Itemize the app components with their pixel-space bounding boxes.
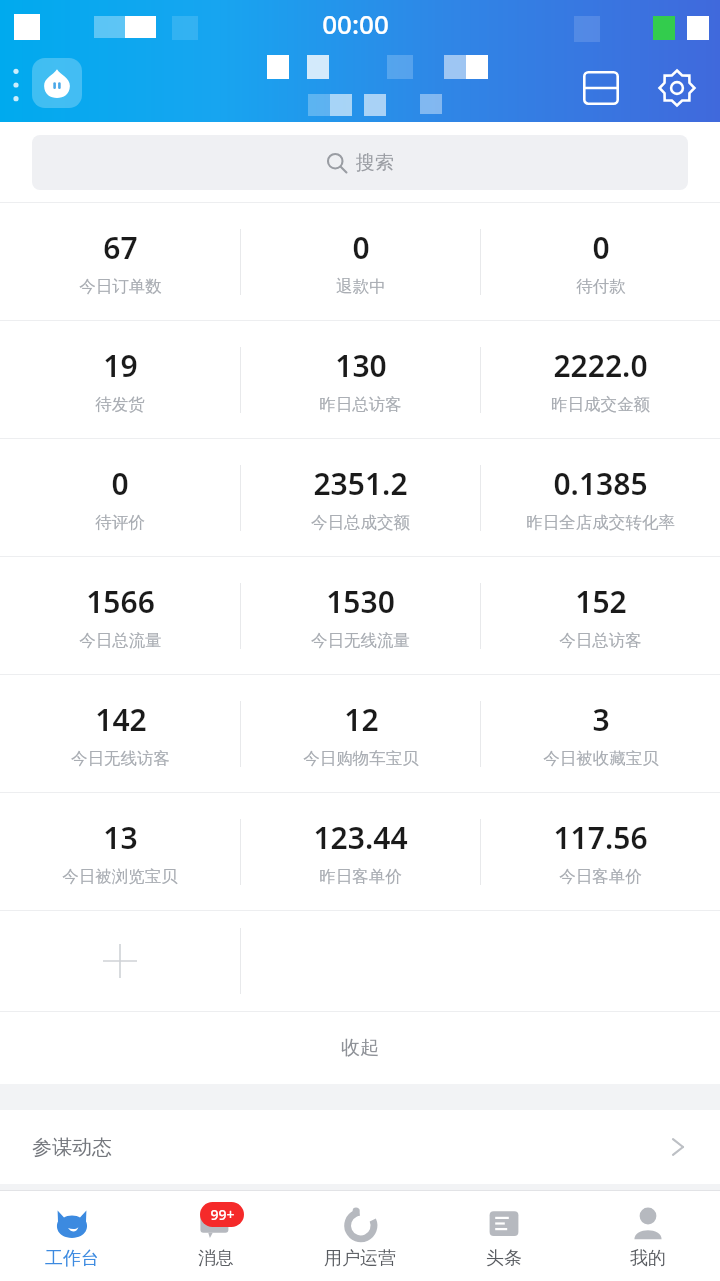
staticText: 工作台 [45,1247,99,1270]
staticText: 待付款 [576,276,626,297]
staticText: 0.1385 [553,463,648,504]
staticText: 今日无线流量 [311,630,410,651]
button[interactable]: 99+ [144,1191,288,1281]
button[interactable]: 130 [241,321,480,438]
staticText: 消息 [198,1247,234,1270]
staticText: 67 [103,227,138,268]
button[interactable]: 152 [481,557,720,674]
button[interactable]: 3 [481,675,720,792]
staticText: 12 [344,699,379,740]
button[interactable]: 0 [241,203,480,320]
staticText: 0 [352,227,370,268]
staticText: 2351.2 [313,463,408,504]
button[interactable]: Settings [651,62,703,114]
staticText: 今日总成交额 [311,512,410,533]
staticText: 142 [95,699,147,740]
button[interactable]: 0 [0,439,240,556]
staticText: 头条 [486,1247,522,1270]
staticText: 昨日成交金额 [551,394,650,415]
staticText: 今日订单数 [79,276,162,297]
staticText: 13 [103,817,138,858]
staticText: 152 [575,581,627,622]
button[interactable]: 参谋动态 [0,1110,720,1184]
staticText: 117.56 [553,817,648,858]
button[interactable]: 用户运营 [288,1191,432,1281]
staticText: 00:00 [322,6,389,41]
staticText: 昨日总访客 [319,394,402,415]
staticText: 19 [103,345,138,386]
staticText: 搜索 [356,151,394,175]
staticText: 130 [335,345,387,386]
staticText: 今日被浏览宝贝 [62,866,178,887]
button[interactable]: 123.44 [241,793,480,910]
staticText: 今日总访客 [559,630,642,651]
staticText: 1530 [326,581,395,622]
staticText: 昨日客单价 [319,866,402,887]
button[interactable]: 0.1385 [481,439,720,556]
staticText: 今日无线访客 [71,748,170,769]
button[interactable]: 收起 [0,1012,720,1084]
button[interactable]: 19 [0,321,240,438]
staticText: 2222.0 [553,345,648,386]
button[interactable]: Split view [575,62,627,114]
button[interactable]: 67 [0,203,240,320]
staticText: 0 [111,463,129,504]
staticText: 收起 [341,1036,379,1060]
staticText: 待评价 [95,512,145,533]
staticText: 退款中 [336,276,386,297]
button[interactable]: 142 [0,675,240,792]
staticText: 今日总流量 [79,630,162,651]
staticText: 今日被收藏宝贝 [543,748,659,769]
staticText: 待发货 [95,394,145,415]
button[interactable]: 1566 [0,557,240,674]
button[interactable]: 13 [0,793,240,910]
button[interactable]: App logo [32,58,82,108]
staticText: 今日购物车宝贝 [303,748,419,769]
button[interactable]: 搜索 [32,135,688,190]
button[interactable]: 12 [241,675,480,792]
staticText: 1566 [86,581,155,622]
staticText: 今日客单价 [559,866,642,887]
staticText: 99+ [210,1205,235,1224]
button[interactable]: 工作台 [0,1191,144,1281]
button[interactable]: 我的 [576,1191,720,1281]
staticText: 用户运营 [324,1247,396,1270]
button[interactable]: 117.56 [481,793,720,910]
staticText: 我的 [630,1247,666,1270]
staticText: 123.44 [313,817,408,858]
button[interactable]: 1530 [241,557,480,674]
staticText: 参谋动态 [32,1135,112,1160]
staticText: 3 [592,699,610,740]
staticText: 昨日全店成交转化率 [526,512,675,533]
button[interactable]: 2222.0 [481,321,720,438]
button[interactable]: 2351.2 [241,439,480,556]
button[interactable]: 头条 [432,1191,576,1281]
staticText: 0 [592,227,610,268]
button[interactable]: 0 [481,203,720,320]
